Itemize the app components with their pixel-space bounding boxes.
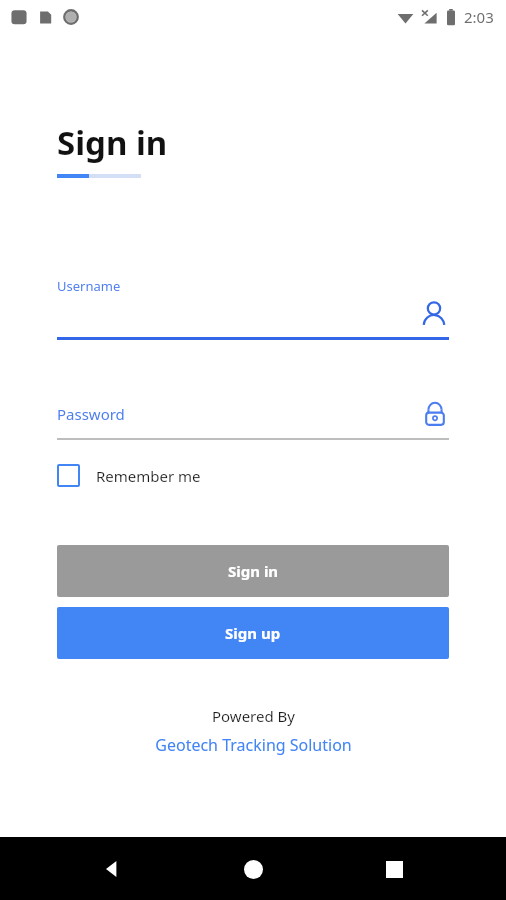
button[interactable]: Username: [57, 277, 449, 340]
button[interactable]: Sign up: [57, 607, 449, 659]
button[interactable]: Recent apps: [365, 840, 423, 898]
staticText: Sign up: [225, 623, 281, 643]
button[interactable]: Remember me: [57, 464, 201, 487]
button[interactable]: Password: [57, 398, 449, 440]
staticText: Sign in: [228, 561, 279, 581]
staticText: Powered By: [212, 706, 295, 726]
staticText: Remember me: [96, 466, 201, 486]
button[interactable]: Geotech Tracking Solution: [155, 734, 352, 756]
button[interactable]: Back: [83, 840, 141, 898]
staticText: Username: [57, 277, 121, 295]
button[interactable]: Sign in: [57, 545, 449, 597]
other: Username: [419, 300, 449, 330]
button[interactable]: Home: [224, 840, 282, 898]
staticText: Sign in: [57, 120, 168, 165]
other: Password: [421, 400, 449, 428]
staticText: 2:03: [464, 7, 494, 27]
staticText: Password: [57, 404, 125, 424]
